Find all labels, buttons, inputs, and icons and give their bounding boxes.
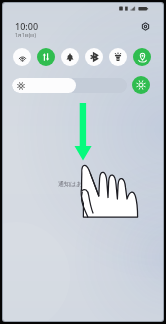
button[interactable]: Settings	[140, 22, 156, 37]
button[interactable]: Auto brightness	[132, 76, 150, 94]
button[interactable]	[12, 78, 127, 93]
button[interactable]: Data	[37, 48, 55, 66]
button[interactable]: Notifications	[61, 48, 79, 66]
button[interactable]: Flashlight	[109, 48, 127, 66]
staticText: 通知はあ	[58, 180, 83, 188]
staticText: 1月1日(日)	[15, 32, 36, 38]
button[interactable]: Bluetooth	[85, 48, 103, 66]
staticText: 10:00	[15, 20, 39, 32]
button[interactable]: Wi-Fi	[13, 48, 31, 66]
button[interactable]: Location	[133, 48, 151, 66]
